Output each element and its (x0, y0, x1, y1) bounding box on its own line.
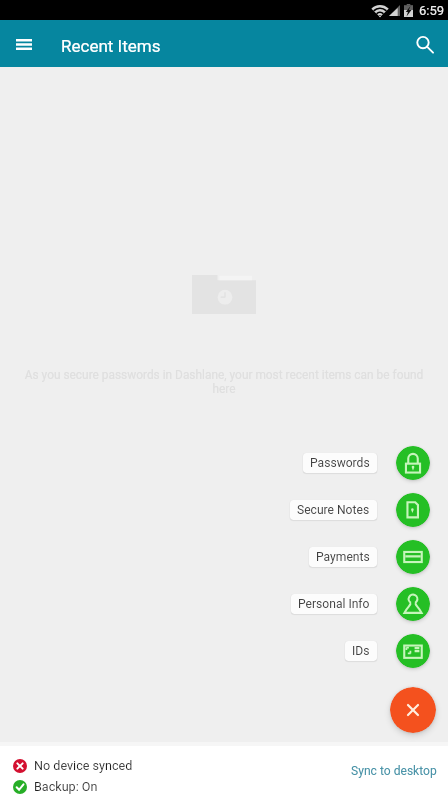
staticText: 6:59 (419, 3, 445, 18)
staticText: Secure Notes (297, 503, 370, 517)
staticText: Sync to desktop (351, 764, 437, 778)
button[interactable]: Payments (309, 533, 436, 580)
staticText: Recent Items (61, 36, 161, 56)
button[interactable]: Secure Notes (290, 486, 436, 533)
staticText: IDs (352, 644, 370, 658)
staticText: Payments (316, 550, 370, 564)
staticText: As you secure passwords in Dashlane, you… (18, 368, 430, 396)
staticText: Personal Info (298, 597, 370, 611)
button[interactable]: Open navigation menu (7, 27, 41, 61)
staticText: No device synced (34, 758, 133, 773)
button[interactable]: Close create menu (390, 687, 436, 733)
button[interactable]: Search (405, 25, 443, 63)
button[interactable]: IDs (345, 627, 436, 674)
staticText: Passwords (310, 456, 370, 470)
staticText: Backup: On (34, 779, 98, 794)
button[interactable]: Passwords (303, 439, 436, 486)
button[interactable]: Personal Info (291, 580, 436, 627)
button[interactable]: Sync to desktop (343, 756, 445, 786)
